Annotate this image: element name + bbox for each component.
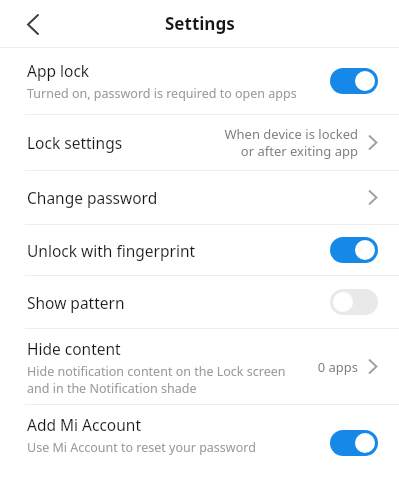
staticText: Add Mi Account xyxy=(27,414,142,435)
button[interactable] xyxy=(330,289,378,315)
button[interactable]: Unlock with fingerprint xyxy=(0,225,399,275)
staticText: Use Mi Account to reset your password xyxy=(27,439,256,456)
staticText: Change password xyxy=(27,187,158,208)
staticText: When device is locked or after exiting a… xyxy=(224,125,358,160)
button[interactable] xyxy=(330,68,378,94)
button[interactable]: Hide content xyxy=(0,329,399,404)
staticText: App lock xyxy=(27,60,90,81)
staticText: Unlock with fingerprint xyxy=(27,240,196,261)
staticText: Turned on, password is required to open … xyxy=(27,85,297,102)
staticText: Settings xyxy=(165,12,235,35)
staticText: Lock settings xyxy=(27,132,123,153)
staticText: Show pattern xyxy=(27,292,125,313)
staticText: Hide content xyxy=(27,338,121,359)
button[interactable]: App lock xyxy=(0,48,399,114)
button[interactable]: Add Mi Account xyxy=(0,405,399,480)
button[interactable] xyxy=(330,237,378,263)
button[interactable]: Change password xyxy=(0,171,399,224)
button[interactable]: Lock settings xyxy=(0,115,399,170)
button[interactable] xyxy=(17,8,49,40)
button[interactable] xyxy=(330,430,378,456)
button[interactable]: Show pattern xyxy=(0,276,399,328)
staticText: 0 apps xyxy=(317,358,358,376)
staticText: Hide notification content on the Lock sc… xyxy=(27,363,286,396)
